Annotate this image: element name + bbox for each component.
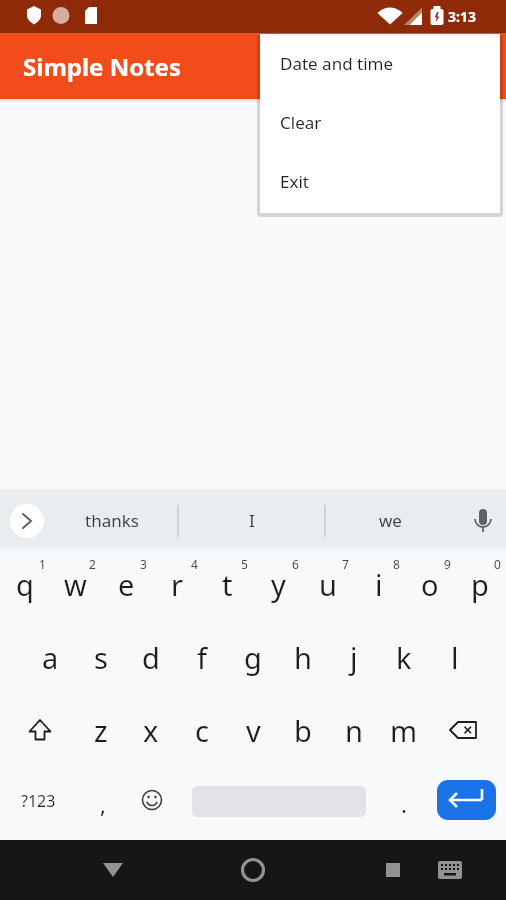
staticText: p <box>471 565 489 604</box>
staticText: y <box>271 565 286 604</box>
staticText: 3 <box>140 556 147 570</box>
staticText: 6 <box>292 556 299 570</box>
staticText: i <box>375 565 383 604</box>
staticText: 8 <box>393 556 400 570</box>
staticText: l <box>451 638 459 677</box>
button[interactable] <box>3 497 51 545</box>
button[interactable]: r <box>153 560 201 608</box>
button[interactable] <box>0 840 168 900</box>
button[interactable]: z <box>77 706 125 754</box>
staticText: 9 <box>444 556 451 570</box>
staticText: 4 <box>191 556 198 570</box>
staticText: Exit <box>280 170 309 193</box>
button[interactable]: k <box>380 633 428 681</box>
button[interactable]: d <box>127 633 175 681</box>
button[interactable]: i <box>355 560 403 608</box>
button[interactable] <box>458 497 506 545</box>
staticText: t <box>222 565 233 604</box>
button[interactable] <box>128 776 176 824</box>
staticText: z <box>94 711 108 750</box>
staticText: b <box>294 711 312 750</box>
staticText: a <box>42 638 59 677</box>
staticText: Clear <box>280 111 322 134</box>
staticText: q <box>16 565 34 604</box>
button[interactable]: e <box>102 560 150 608</box>
button[interactable] <box>337 840 506 900</box>
staticText: 7 <box>342 556 349 570</box>
staticText: g <box>244 638 262 677</box>
staticText: m <box>390 711 418 750</box>
button[interactable]: w <box>51 560 99 608</box>
button[interactable] <box>16 706 64 754</box>
button[interactable]: , <box>86 780 120 828</box>
staticText: w <box>64 565 87 604</box>
staticText: 2 <box>89 556 96 570</box>
staticText: s <box>94 638 108 677</box>
button[interactable]: j <box>330 633 378 681</box>
button[interactable]: I <box>200 492 304 548</box>
button[interactable]: Date and time <box>260 34 500 93</box>
button[interactable]: v <box>229 706 277 754</box>
staticText: , <box>100 789 106 819</box>
button[interactable]: . <box>388 780 420 828</box>
button[interactable]: Simple Notes <box>0 33 506 99</box>
button[interactable]: q <box>1 560 49 608</box>
staticText: r <box>171 565 183 604</box>
staticText: thanks <box>85 509 139 532</box>
button[interactable]: s <box>77 633 125 681</box>
button[interactable]: m <box>380 706 428 754</box>
staticText: d <box>142 638 160 677</box>
button[interactable]: Clear <box>260 93 500 152</box>
button[interactable]: g <box>229 633 277 681</box>
button[interactable]: ?123 <box>12 786 64 816</box>
staticText: j <box>350 638 358 677</box>
button[interactable] <box>439 706 487 754</box>
staticText: 0 <box>494 556 501 570</box>
staticText: c <box>195 711 209 750</box>
staticText: I <box>249 509 255 532</box>
staticText: v <box>246 711 261 750</box>
button[interactable]: n <box>330 706 378 754</box>
staticText: Simple Notes <box>23 50 181 83</box>
button[interactable]: l <box>431 633 479 681</box>
button[interactable]: u <box>304 560 352 608</box>
button[interactable]: t <box>203 560 251 608</box>
staticText: 1 <box>39 556 46 570</box>
staticText: we <box>379 509 402 532</box>
button[interactable]: thanks <box>60 492 164 548</box>
button[interactable]: c <box>178 706 226 754</box>
button[interactable]: y <box>254 560 302 608</box>
button[interactable]: p <box>456 560 504 608</box>
staticText: 3:13 <box>448 7 476 26</box>
button[interactable]: o <box>406 560 454 608</box>
staticText: Date and time <box>280 52 394 75</box>
staticText: f <box>197 638 207 677</box>
button[interactable] <box>168 840 337 900</box>
button[interactable]: b <box>279 706 327 754</box>
button[interactable]: h <box>279 633 327 681</box>
staticText: x <box>143 711 159 750</box>
button[interactable]: f <box>178 633 226 681</box>
staticText: h <box>294 638 312 677</box>
staticText: o <box>421 565 439 604</box>
staticText: . <box>401 789 407 819</box>
button[interactable]: a <box>26 633 74 681</box>
button[interactable]: x <box>127 706 175 754</box>
staticText: 5 <box>241 556 248 570</box>
button[interactable] <box>437 780 496 820</box>
staticText: n <box>345 711 363 750</box>
button[interactable]: Exit <box>260 152 500 211</box>
button[interactable]: we <box>338 492 442 548</box>
staticText: e <box>118 565 135 604</box>
staticText: u <box>319 565 337 604</box>
staticText: ?123 <box>21 790 56 812</box>
staticText: k <box>396 638 412 677</box>
